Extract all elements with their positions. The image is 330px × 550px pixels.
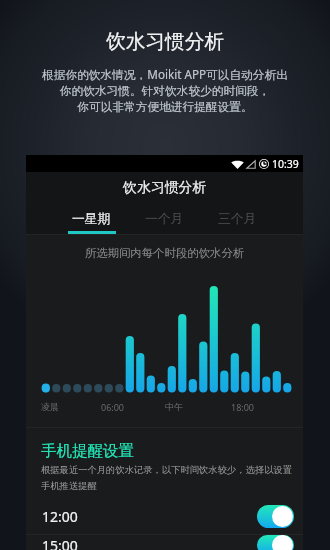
staticText: 一个月 — [145, 211, 184, 227]
staticText: 06:00 — [101, 401, 125, 413]
staticText: 根据你的饮水情况，Moikit APP可以自动分析出 你的饮水习惯。针对饮水较少… — [0, 66, 330, 114]
staticText: 三个月 — [218, 211, 257, 227]
staticText: 一星期 — [72, 211, 111, 227]
staticText: 所选期间内每个时段的饮水分析 — [26, 246, 303, 260]
other: Toggle reminder 15:00 — [257, 535, 294, 550]
staticText: 15:00 — [42, 536, 78, 550]
staticText: 10:39 — [272, 157, 299, 171]
button[interactable]: 15:00 — [26, 535, 303, 550]
staticText: 中午 — [165, 401, 183, 412]
staticText: 手机提醒设置 — [41, 441, 134, 461]
other: Toggle reminder 12:00 — [257, 505, 294, 528]
staticText: 12:00 — [42, 507, 78, 526]
button[interactable]: 12:00 — [26, 499, 303, 534]
staticText: 凌晨 — [41, 401, 59, 412]
staticText: 饮水习惯分析 — [106, 29, 225, 54]
button[interactable]: 一个月 — [128, 205, 201, 235]
button[interactable]: 一星期 — [55, 205, 128, 235]
staticText: 根据最近一个月的饮水记录，以下时间饮水较少，选择以设置 手机推送提醒 — [41, 464, 293, 492]
staticText: 饮水习惯分析 — [123, 179, 207, 197]
button[interactable]: 三个月 — [201, 205, 274, 235]
button[interactable]: 饮水习惯分析 — [26, 172, 303, 205]
staticText: 18:00 — [231, 401, 255, 413]
